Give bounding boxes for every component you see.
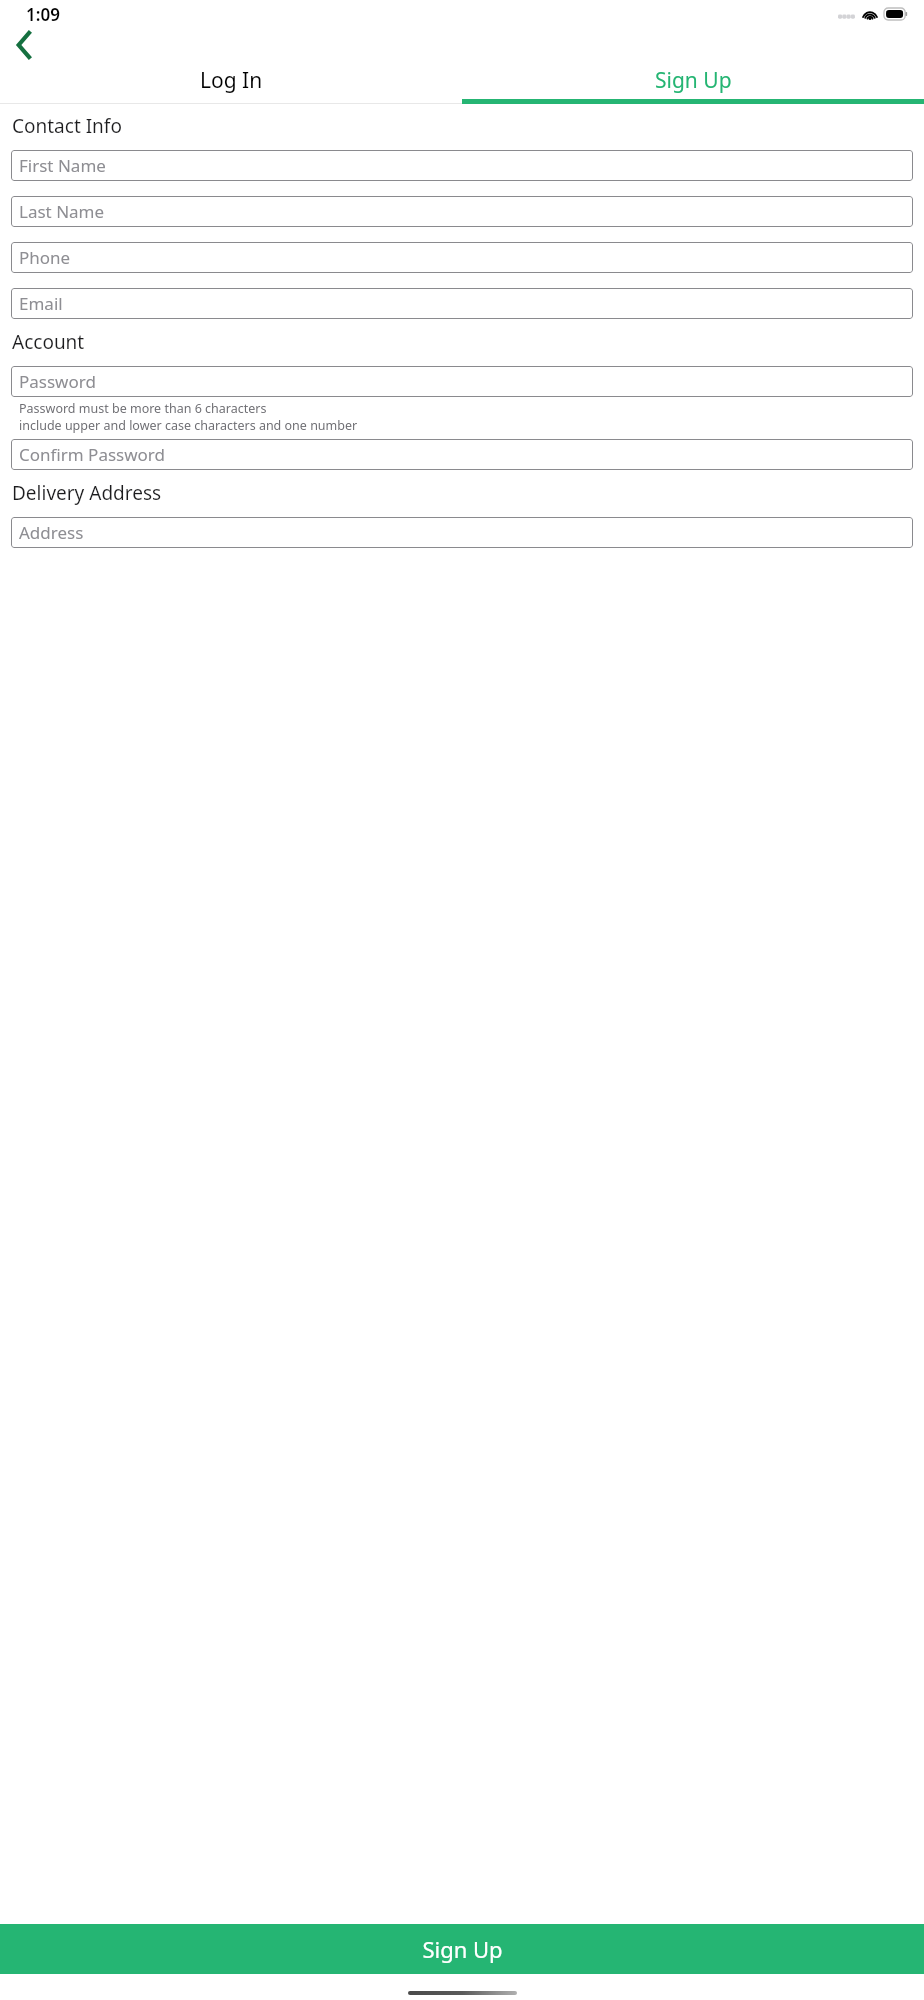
staticText: Delivery Address [12,480,162,506]
button[interactable]: Sign Up [0,1924,924,1974]
staticText: Password [19,370,96,393]
button[interactable]: Log In [0,61,462,99]
staticText: Account [12,329,85,355]
button[interactable]: Sign Up [462,61,924,99]
button[interactable]: Phone [11,242,913,273]
button[interactable]: Confirm Password [11,439,913,470]
staticText: Contact Info [12,113,122,139]
staticText: Log In [200,66,263,95]
staticText: 1:09 [26,3,60,26]
button[interactable]: Last Name [11,196,913,227]
staticText: Sign Up [422,1934,503,1964]
staticText: Password must be more than 6 characters [19,400,267,417]
staticText: Last Name [19,200,105,223]
staticText: Email [19,292,63,315]
staticText: Address [19,521,84,544]
staticText: include upper and lower case characters … [19,417,358,434]
staticText: Phone [19,246,71,269]
button[interactable]: Password [11,366,913,397]
button[interactable]: Email [11,288,913,319]
staticText: Confirm Password [19,443,165,466]
button[interactable]: Address [11,517,913,548]
button[interactable]: First Name [11,150,913,181]
staticText: First Name [19,154,106,177]
button[interactable]: Back [6,28,42,61]
staticText: Sign Up [655,66,732,95]
